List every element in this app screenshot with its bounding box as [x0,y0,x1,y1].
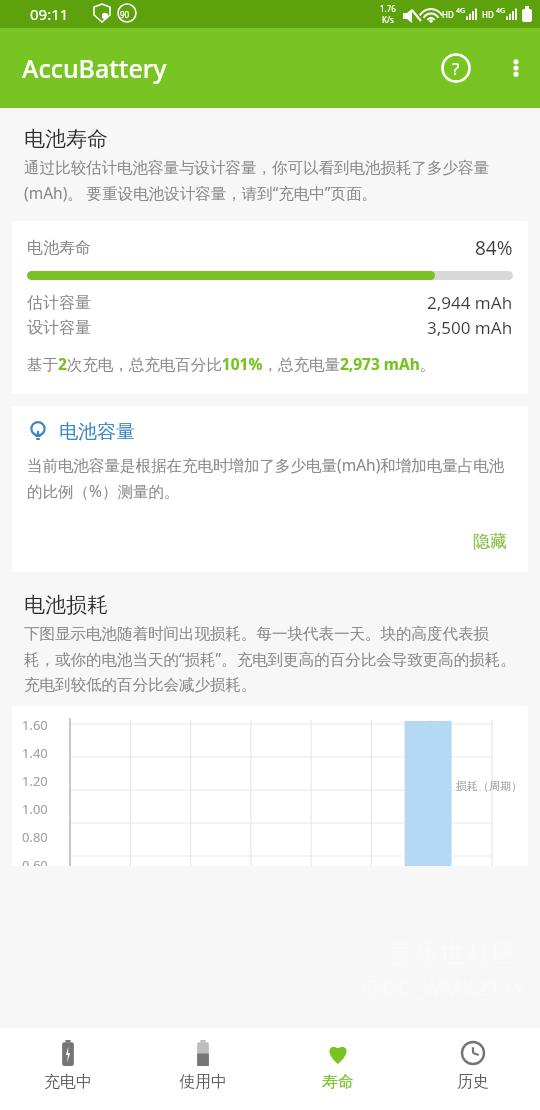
staticText: 0.60 [22,856,48,866]
button[interactable]: Help [432,44,480,92]
staticText: 1.76 [380,3,396,14]
staticText: 电池容量 [59,420,135,444]
staticText: 基于2次充电，总充电百分比101%，总充电量2,973 mAh。 [27,353,436,374]
staticText: 1.40 [22,744,48,762]
staticText: 3,500 mAh [427,316,513,339]
staticText: 1.00 [22,800,48,818]
staticText: 设计容量 [27,318,91,338]
staticText: 4G [496,6,506,16]
staticText: 1.60 [22,716,48,734]
staticText: HD [482,9,494,20]
button[interactable]: More options [492,44,540,92]
staticText: 4G [456,6,466,16]
staticText: 09:11 [30,4,69,24]
button[interactable]: 寿命 [270,1028,405,1092]
staticText: HD [442,9,454,20]
staticText: 0.80 [22,828,48,846]
staticText: 充电中 [44,1072,92,1092]
button[interactable]: 充电中 [0,1028,135,1092]
button[interactable]: 隐藏 [467,527,513,556]
staticText: 电池损耗 [24,592,108,618]
staticText: 历史 [457,1072,489,1092]
button[interactable]: 历史 [405,1028,540,1092]
staticText: AccuBattery [22,51,167,85]
staticText: ? [452,57,460,80]
staticText: 1.20 [22,772,48,790]
staticText: 寿命 [322,1072,354,1092]
staticText: 估计容量 [27,293,91,313]
staticText: 下图显示电池随着时间出现损耗。每一块代表一天。块的高度代表损耗，或你的电池当天的… [24,624,518,694]
staticText: 84% [475,235,513,261]
staticText: 电池寿命 [24,126,108,152]
staticText: 通过比较估计电池容量与设计容量，你可以看到电池损耗了多少容量(mAh)。 要重设… [24,158,518,203]
button[interactable]: 使用中 [135,1028,270,1092]
staticText: 电池寿命 [27,238,91,258]
staticText: 当前电池容量是根据在充电时增加了多少电量(mAh)和增加电量占电池的比例（%）测… [27,454,513,501]
staticText: 90 [120,9,130,20]
staticText: 损耗（周期） [456,779,522,793]
staticText: 使用中 [179,1072,227,1092]
staticText: 2,944 mAh [427,291,513,314]
staticText: K/s [382,14,394,25]
staticText: 隐藏 [473,531,507,552]
